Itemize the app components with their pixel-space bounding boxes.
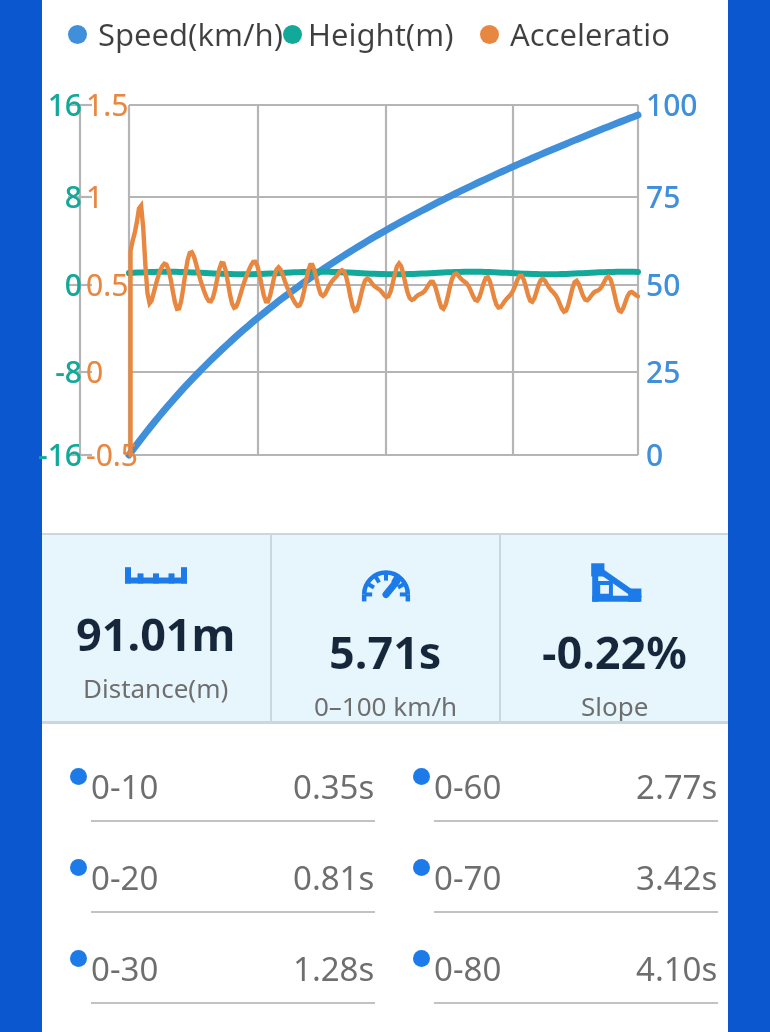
staticText: 0-60 bbox=[434, 764, 502, 809]
staticText: 0.35s bbox=[293, 764, 375, 809]
staticText: 5.71s bbox=[329, 621, 442, 682]
staticText: 3.42s bbox=[636, 855, 718, 900]
staticText: Slope bbox=[581, 688, 649, 721]
button[interactable]: Slope bbox=[501, 535, 728, 721]
button[interactable]: 0-80 bbox=[385, 946, 728, 1032]
button[interactable]: 0-70 bbox=[385, 855, 728, 946]
button[interactable]: 0-10 bbox=[42, 764, 385, 855]
button[interactable]: 0-20 bbox=[42, 855, 385, 946]
other: Time bbox=[360, 557, 412, 609]
staticText: 25 bbox=[646, 351, 681, 392]
staticText: 2.77s bbox=[636, 764, 718, 809]
staticText: 91.01m bbox=[76, 603, 236, 664]
staticText: Height(m) bbox=[308, 13, 454, 55]
staticText: 75 bbox=[646, 176, 681, 217]
staticText: Acceleratio bbox=[510, 13, 671, 55]
staticText: 100 bbox=[646, 84, 698, 125]
other: Distance bbox=[125, 557, 187, 591]
staticText: -0.5 bbox=[86, 434, 139, 475]
staticText: 50 bbox=[646, 264, 681, 305]
staticText: 0-70 bbox=[434, 855, 502, 900]
staticText: 4.10s bbox=[636, 946, 718, 991]
staticText: 0–100 km/h bbox=[314, 688, 458, 721]
staticText: 0 bbox=[38, 264, 82, 305]
button[interactable]: 0-30 bbox=[42, 946, 385, 1032]
staticText: 0.81s bbox=[293, 855, 375, 900]
staticText: 1.28s bbox=[293, 946, 375, 991]
staticText: 0 bbox=[646, 434, 664, 475]
staticText: 0-80 bbox=[434, 946, 502, 991]
staticText: Distance(m) bbox=[83, 670, 229, 705]
staticText: 0-10 bbox=[91, 764, 159, 809]
staticText: Speed(km/h) bbox=[98, 13, 283, 55]
staticText: 0.5 bbox=[86, 264, 129, 305]
staticText: -16 bbox=[38, 434, 82, 475]
staticText: 0 bbox=[86, 351, 104, 392]
button[interactable]: Time bbox=[272, 535, 499, 721]
staticText: 0-20 bbox=[91, 855, 159, 900]
staticText: 16 bbox=[38, 84, 82, 125]
button[interactable]: 0-60 bbox=[385, 764, 728, 855]
staticText: 1 bbox=[86, 176, 104, 217]
staticText: -8 bbox=[38, 351, 82, 392]
other: Slope bbox=[585, 557, 645, 609]
staticText: -0.22% bbox=[542, 621, 687, 682]
staticText: 0-30 bbox=[91, 946, 159, 991]
staticText: 1.5 bbox=[86, 84, 129, 125]
staticText: 8 bbox=[38, 176, 82, 217]
button[interactable]: Distance bbox=[42, 535, 270, 721]
